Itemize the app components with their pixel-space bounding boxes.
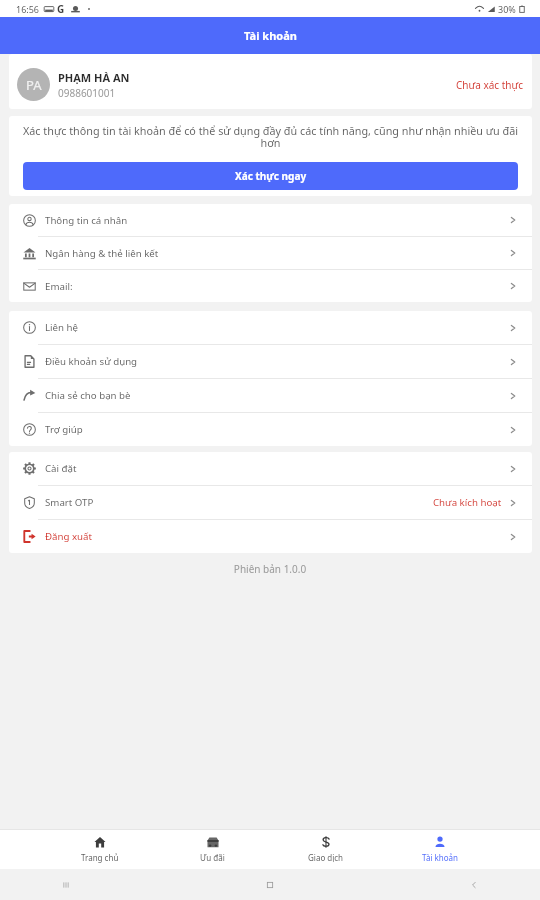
button[interactable]: Trợ giúp (9, 413, 532, 446)
staticText: PA (26, 76, 42, 94)
staticText: Xác thực ngay (235, 169, 307, 183)
button[interactable]: Đăng xuất (9, 520, 532, 553)
staticText: Trợ giúp (45, 423, 83, 436)
button[interactable]: Liên hệ (9, 311, 532, 344)
staticText: Chưa xác thực (456, 78, 524, 92)
button[interactable]: Ngân hàng & thẻ liên kết (9, 237, 532, 269)
staticText: Smart OTP (45, 496, 94, 509)
staticText: Tài khoản (422, 852, 459, 863)
button[interactable]: Ưu đãi (156, 829, 269, 869)
staticText: G (57, 2, 65, 16)
staticText: 0988601001 (58, 86, 116, 100)
button[interactable]: Thông tin cá nhân (9, 204, 532, 236)
staticText: Điều khoản sử dụng (45, 355, 138, 368)
staticText: Email: (45, 280, 73, 293)
staticText: Ngân hàng & thẻ liên kết (45, 247, 159, 260)
button[interactable]: Email: (9, 270, 532, 302)
staticText: Cài đặt (45, 462, 77, 475)
staticText: 16:56 (16, 3, 40, 15)
other: Recent apps (60, 879, 72, 891)
button[interactable]: Xác thực ngay (23, 162, 518, 190)
button[interactable]: Chia sẻ cho bạn bè (9, 379, 532, 412)
staticText: Chưa kích hoạt (433, 496, 502, 509)
staticText: Liên hệ (45, 321, 78, 334)
staticText: Phiên bản 1.0.0 (0, 562, 540, 576)
staticText: Chia sẻ cho bạn bè (45, 389, 131, 402)
staticText: 30% (498, 3, 516, 15)
button[interactable]: PA (9, 54, 532, 109)
button[interactable]: Smart OTP (9, 486, 532, 519)
button[interactable]: Giao dịch (269, 829, 383, 869)
staticText: Giao dịch (308, 852, 344, 863)
button[interactable]: Tài khoản (383, 829, 497, 869)
staticText: PHẠM HÀ AN (58, 70, 130, 85)
button[interactable]: Điều khoản sử dụng (9, 345, 532, 378)
staticText: Đăng xuất (45, 530, 93, 543)
other: Back (468, 879, 480, 891)
staticText: Ưu đãi (200, 852, 225, 863)
button[interactable]: Cài đặt (9, 452, 532, 485)
button[interactable]: Trang chủ (43, 829, 156, 869)
staticText: Thông tin cá nhân (45, 214, 128, 227)
staticText: Trang chủ (81, 852, 119, 863)
other: Home (264, 879, 276, 891)
staticText: Xác thực thông tin tài khoản để có thể s… (22, 123, 519, 150)
staticText: Tài khoản (244, 28, 297, 43)
